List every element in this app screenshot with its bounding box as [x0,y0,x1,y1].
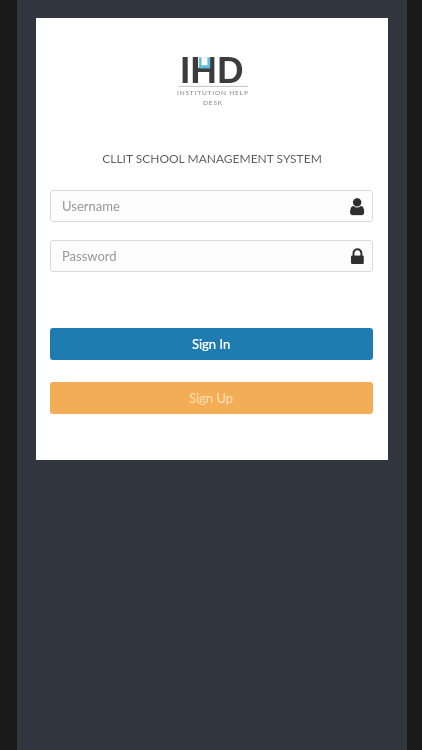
staticText: IHD [180,50,244,91]
staticText: Sign Up [189,390,234,406]
staticText:  [351,247,364,267]
other: Password [346,246,368,268]
button[interactable]: Sign In [50,328,373,360]
staticText:  [350,197,365,217]
staticText: Password [62,248,117,264]
button[interactable]: Username [50,190,373,222]
other: User [346,196,368,218]
button[interactable]: Password [50,240,373,272]
staticText: Username [62,198,120,214]
staticText: DESK [203,99,223,107]
staticText: CLLIT SCHOOL MANAGEMENT SYSTEM [102,151,322,165]
staticText: INSTITUTION HELP [177,89,249,97]
staticText: Sign In [192,336,231,352]
button[interactable]: Sign Up [50,382,373,414]
